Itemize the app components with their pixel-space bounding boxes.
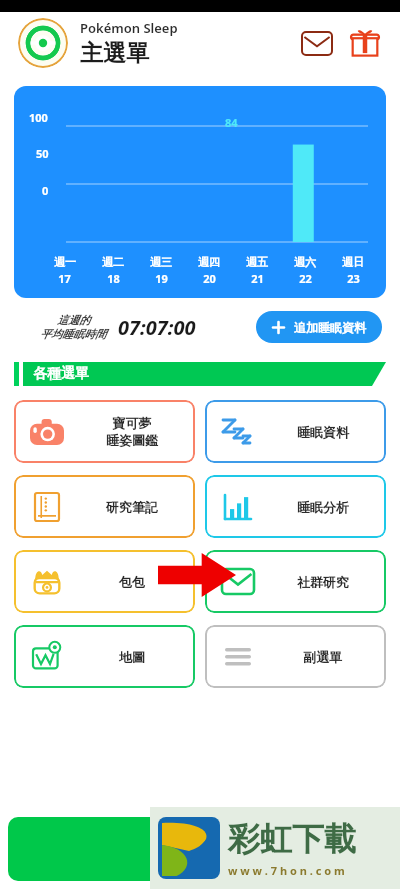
staticText: 各種選單 xyxy=(33,365,89,383)
staticText: 100 xyxy=(29,110,48,125)
button[interactable]: Gift xyxy=(348,26,382,60)
button[interactable]: 研究筆記 xyxy=(14,475,195,538)
staticText: 主選單 xyxy=(80,39,149,68)
staticText: 週六 xyxy=(294,255,316,269)
staticText: 包包 xyxy=(119,574,145,590)
staticText: 研究筆記 xyxy=(106,499,158,515)
staticText: 週一 xyxy=(54,255,76,269)
staticText: w w w . 7 h o n . c o m xyxy=(228,863,345,878)
button[interactable]: 社群研究 xyxy=(205,550,386,613)
staticText: 50 xyxy=(36,146,49,161)
button[interactable]: 包包 xyxy=(14,550,195,613)
button[interactable]: 寶可夢 睡姿圖鑑 xyxy=(14,400,195,463)
staticText: 0 xyxy=(42,183,49,198)
button[interactable]: 地圖 xyxy=(14,625,195,688)
button[interactable]: Mail xyxy=(300,28,334,58)
staticText: 週日 xyxy=(342,255,364,269)
staticText: 84 xyxy=(225,115,238,130)
staticText: 平均睡眠時間 xyxy=(40,327,106,341)
button[interactable]: 追加睡眠資料 xyxy=(272,311,366,343)
staticText: 睡眠分析 xyxy=(297,499,349,515)
staticText: 22 xyxy=(299,271,312,286)
staticText: 追加睡眠資料 xyxy=(294,320,366,335)
button[interactable]: 睡眠分析 xyxy=(205,475,386,538)
staticText: 週四 xyxy=(198,255,220,269)
staticText: 副選單 xyxy=(303,649,342,665)
button[interactable] xyxy=(8,817,208,881)
staticText: 17 xyxy=(58,271,71,286)
staticText: 07:07:00 xyxy=(118,314,196,341)
staticText: 週三 xyxy=(150,255,172,269)
staticText: 寶可夢 睡姿圖鑑 xyxy=(106,415,158,449)
staticText: 地圖 xyxy=(119,649,145,665)
staticText: 19 xyxy=(155,271,168,286)
staticText: 社群研究 xyxy=(297,574,349,590)
staticText: 週二 xyxy=(102,255,124,269)
staticText: Pokémon Sleep xyxy=(80,19,178,37)
button[interactable]: Pokemon Sleep logo xyxy=(18,18,68,68)
staticText: 23 xyxy=(347,271,360,286)
staticText: 21 xyxy=(251,271,264,286)
button[interactable]: 睡眠資料 xyxy=(205,400,386,463)
staticText: 20 xyxy=(203,271,216,286)
button[interactable]: 副選單 xyxy=(205,625,386,688)
staticText: 彩虹下載 xyxy=(228,819,356,859)
staticText: 睡眠資料 xyxy=(297,424,349,440)
staticText: 週五 xyxy=(246,255,268,269)
staticText: 18 xyxy=(107,271,120,286)
staticText: 這週的 xyxy=(57,313,90,327)
